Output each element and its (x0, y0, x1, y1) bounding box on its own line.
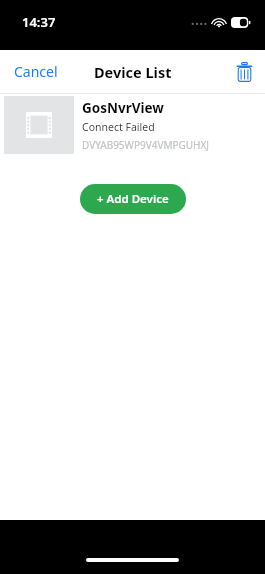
staticText: DVYAB95WP9V4VMPGUHXJ (82, 138, 210, 152)
staticText: Cancel (14, 62, 58, 81)
button[interactable]: GosNvrView (0, 94, 265, 158)
button[interactable]: Delete (224, 56, 265, 88)
staticText: Connect Failed (82, 120, 155, 134)
staticText: Device List (94, 62, 172, 82)
button[interactable]: Cancel (0, 54, 72, 89)
button[interactable]: + Add Device (80, 184, 186, 214)
staticText: GosNvrView (82, 99, 164, 117)
staticText: + Add Device (97, 191, 169, 207)
staticText: 14:37 (22, 13, 56, 31)
